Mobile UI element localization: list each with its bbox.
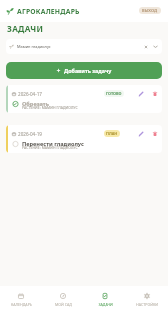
staticText: РАСТЕНИЕ: МАМИН ГЛАДИОЛУС xyxy=(22,105,78,110)
staticText: ВЫХОД xyxy=(142,8,158,13)
button[interactable]: Удалить xyxy=(151,90,159,98)
staticText: МОЙ САД xyxy=(55,302,72,307)
button[interactable]: 2026-04-17 xyxy=(6,85,162,113)
button[interactable]: ВЫХОД xyxy=(139,7,161,14)
staticText: КАЛЕНДАРЬ xyxy=(11,302,32,307)
button[interactable]: НАСТРОЙКИ xyxy=(126,286,168,314)
button[interactable]: МОЙ САД xyxy=(42,286,84,314)
button[interactable]: ЗАДАЧИ xyxy=(84,286,126,314)
staticText: ЗАДАЧИ xyxy=(7,23,44,34)
button[interactable]: Добавить задачу xyxy=(6,62,162,79)
staticText: Обрезать xyxy=(22,100,49,108)
button[interactable]: Мамин гладиолус xyxy=(6,39,162,54)
staticText: 2026-04-19 xyxy=(18,131,42,137)
staticText: 2026-04-17 xyxy=(18,91,42,97)
other: Очистить xyxy=(144,45,148,49)
staticText: Мамин гладиолус xyxy=(17,44,51,49)
button[interactable]: Изменить xyxy=(137,130,145,138)
button[interactable]: ПЛАН xyxy=(104,130,120,137)
button[interactable]: Удалить xyxy=(151,130,159,138)
staticText: ГОТОВО xyxy=(106,91,122,96)
staticText: РАСТЕНИЕ: МАМИН ГЛАДИОЛУС xyxy=(22,145,78,150)
staticText: АГРОКАЛЕНДАРЬ xyxy=(17,7,80,16)
button[interactable]: ГОТОВО xyxy=(104,90,124,97)
staticText: Перенести гладиолус xyxy=(22,140,84,148)
button[interactable]: 2026-04-19 xyxy=(6,125,162,153)
staticText: Добавить задачу xyxy=(64,67,112,74)
button[interactable]: КАЛЕНДАРЬ xyxy=(0,286,42,314)
staticText: ПЛАН xyxy=(106,131,118,136)
staticText: ЗАДАЧИ xyxy=(98,302,113,307)
staticText: НАСТРОЙКИ xyxy=(136,302,158,307)
button[interactable]: Изменить xyxy=(137,90,145,98)
